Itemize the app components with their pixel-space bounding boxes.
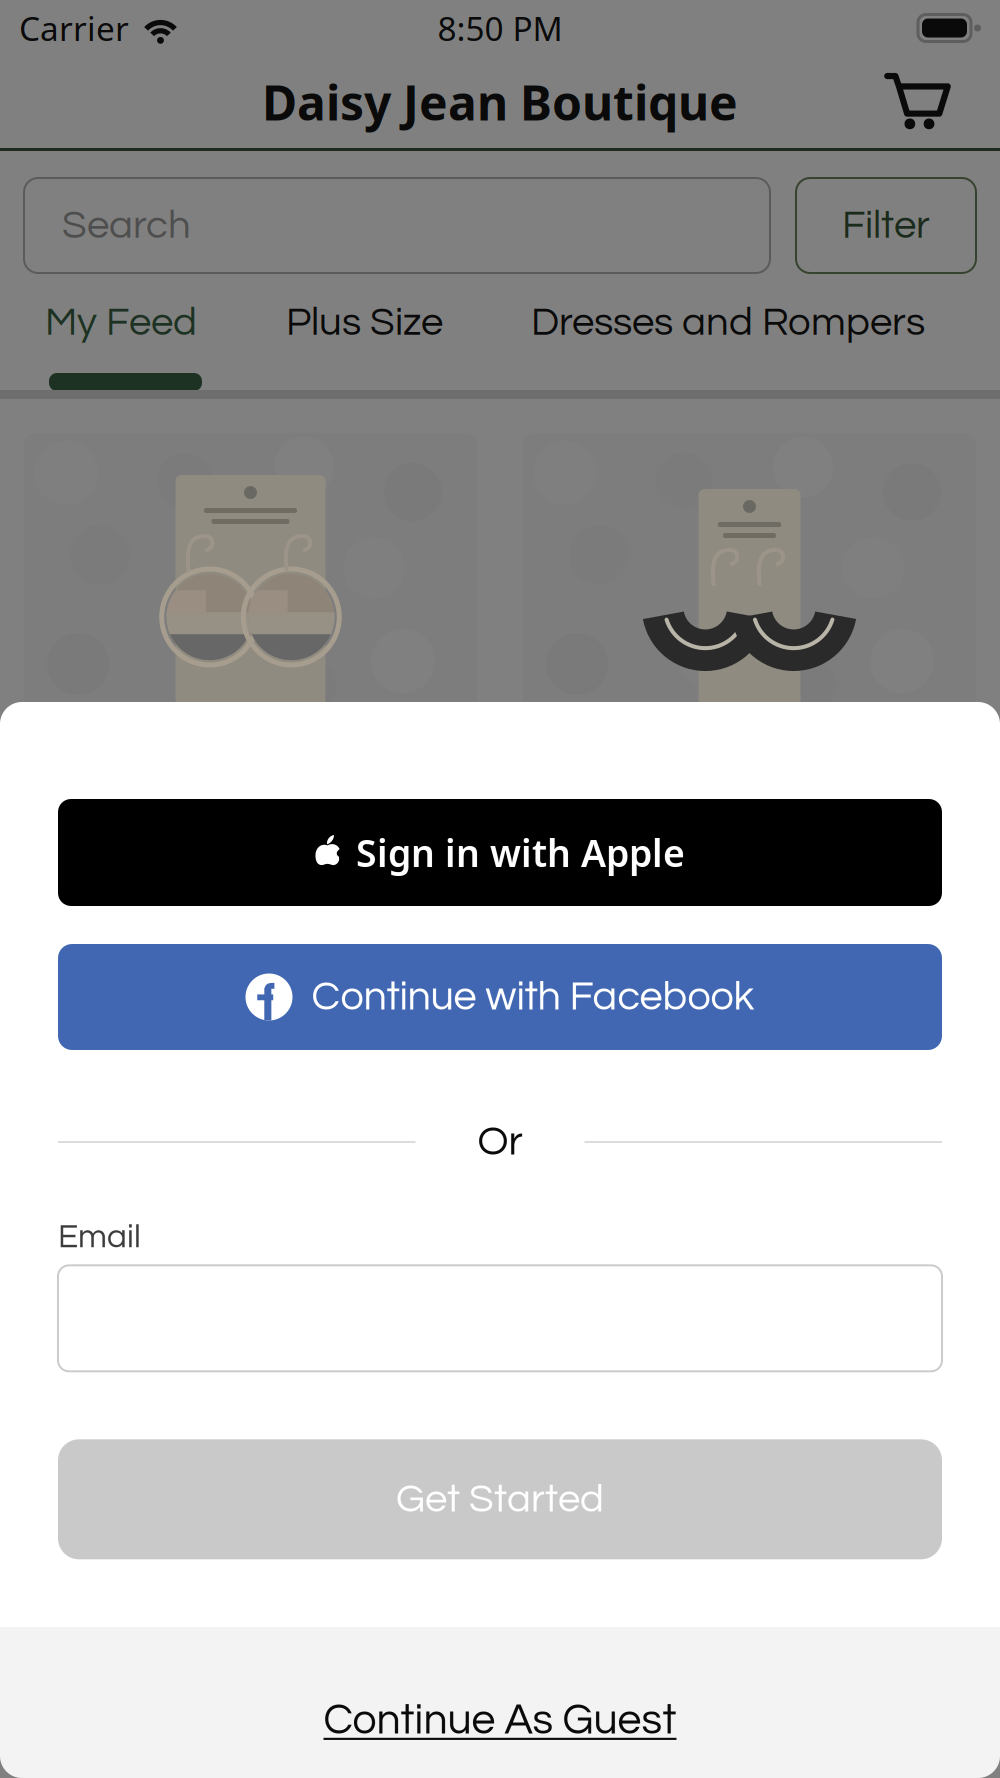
button[interactable]: Continue As Guest	[0, 1627, 1000, 1778]
staticText: Continue with Facebook	[311, 976, 754, 1018]
staticText: Email	[58, 1220, 141, 1254]
button[interactable]: Plus Size	[286, 302, 443, 343]
staticText: Carrier	[19, 6, 129, 50]
button[interactable]: Cart	[871, 59, 964, 145]
button[interactable]: Get Started	[58, 1439, 942, 1559]
button[interactable]: Dresses and Rompers	[531, 302, 925, 343]
staticText: Plus Size	[286, 302, 443, 343]
staticText: Dresses and Rompers	[531, 302, 925, 343]
staticText: Filter	[842, 205, 930, 246]
staticText: 8:50 PM	[437, 6, 562, 50]
staticText: Sign in with Apple	[356, 828, 685, 877]
staticText: My Feed	[45, 302, 197, 343]
button[interactable]: Sign in with Apple	[58, 799, 942, 906]
staticText: Get Started	[396, 1479, 604, 1520]
staticText: Or	[477, 1121, 522, 1163]
button[interactable]: Filter	[796, 178, 976, 273]
button[interactable]: Continue with Facebook	[58, 944, 942, 1050]
button[interactable]: My Feed	[45, 302, 197, 343]
staticText: Continue As Guest	[323, 1698, 676, 1742]
staticText: Daisy Jean Boutique	[262, 70, 738, 134]
staticText: Search	[62, 205, 191, 246]
